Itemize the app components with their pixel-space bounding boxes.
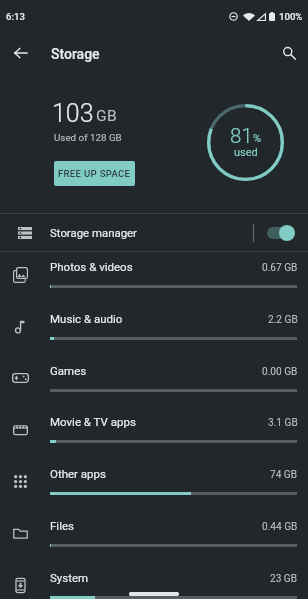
staticText: used <box>234 146 258 159</box>
button[interactable]: Games <box>0 355 308 407</box>
button[interactable]: Other apps <box>0 458 308 510</box>
button[interactable]: Files <box>0 510 308 562</box>
staticText: % <box>253 132 262 145</box>
staticText: 100% <box>279 11 303 22</box>
staticText: Files <box>50 519 74 532</box>
staticText: Storage <box>51 46 100 62</box>
staticText: Movie & TV apps <box>50 415 136 428</box>
staticText: FREE UP SPACE <box>58 168 131 179</box>
staticText: System <box>50 571 89 584</box>
staticText: Photos & videos <box>50 260 133 273</box>
staticText: 0.00 GB <box>262 366 298 378</box>
staticText: 3.1 GB <box>268 417 298 429</box>
staticText: Music & audio <box>50 312 123 325</box>
button[interactable]: Search <box>276 40 302 66</box>
button[interactable] <box>254 214 308 251</box>
staticText: 74 GB <box>270 469 298 481</box>
staticText: 0.44 GB <box>262 521 298 533</box>
button[interactable]: Storage manager <box>0 214 308 251</box>
staticText: Storage manager <box>50 226 137 239</box>
button[interactable]: Photos & videos <box>0 251 308 303</box>
button[interactable]: Music & audio <box>0 303 308 355</box>
staticText: GB <box>96 107 118 125</box>
button[interactable]: Back <box>7 40 33 66</box>
staticText: 81 <box>230 124 253 148</box>
staticText: 0.67 GB <box>262 262 298 274</box>
staticText: 2.2 GB <box>268 314 298 326</box>
staticText: 103 <box>52 99 94 128</box>
button[interactable]: System <box>0 562 308 599</box>
button[interactable]: Movie & TV apps <box>0 406 308 458</box>
staticText: Used of 128 GB <box>54 132 122 143</box>
staticText: Other apps <box>50 467 106 480</box>
staticText: 6:13 <box>6 11 25 22</box>
button[interactable]: FREE UP SPACE <box>54 161 135 186</box>
staticText: 23 GB <box>270 573 298 585</box>
staticText: Games <box>50 364 87 377</box>
